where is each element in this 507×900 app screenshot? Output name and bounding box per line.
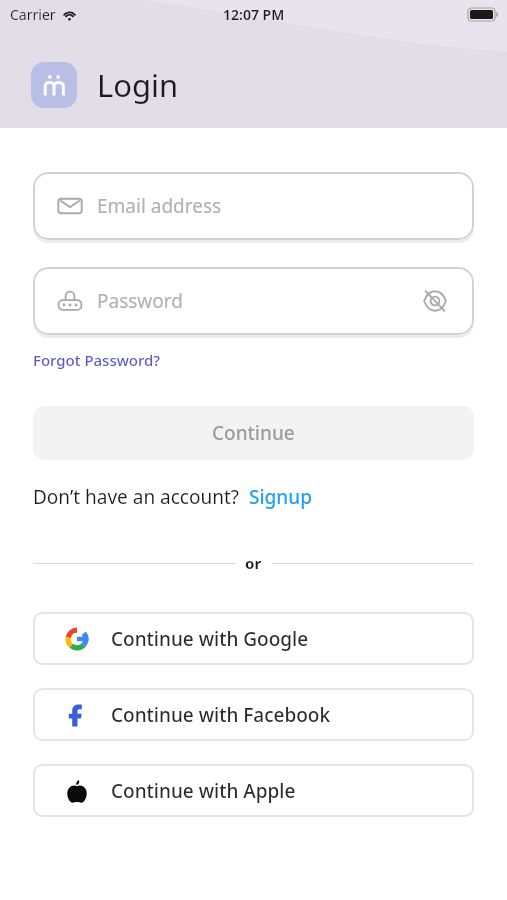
staticText: Forgot Password? xyxy=(33,350,161,370)
staticText: 12:07 PM xyxy=(223,5,285,24)
staticText: Login xyxy=(97,64,179,106)
button[interactable]: Continue xyxy=(33,406,474,460)
staticText: Continue with Apple xyxy=(111,778,296,804)
staticText: Continue with Facebook xyxy=(111,702,331,728)
staticText: Continue xyxy=(212,420,295,446)
button[interactable]: Continue with Google xyxy=(33,612,474,665)
button[interactable]: Password xyxy=(33,267,474,335)
staticText: Signup xyxy=(249,484,312,510)
staticText: Carrier xyxy=(10,5,56,24)
button[interactable]: Email address xyxy=(33,172,474,240)
button[interactable]: Show password xyxy=(420,286,450,316)
staticText: Email address xyxy=(97,193,222,219)
button[interactable]: Signup xyxy=(249,484,312,510)
staticText: Don’t have an account? xyxy=(33,484,240,510)
staticText: Continue with Google xyxy=(111,626,309,652)
staticText: or xyxy=(245,553,262,573)
staticText: Password xyxy=(97,288,183,314)
button[interactable]: Continue with Facebook xyxy=(33,688,474,741)
button[interactable]: Continue with Apple xyxy=(33,764,474,817)
button[interactable]: Forgot Password? xyxy=(33,350,161,370)
